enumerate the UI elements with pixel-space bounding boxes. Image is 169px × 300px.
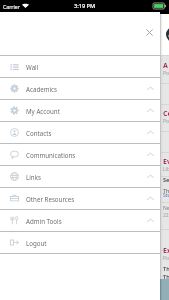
button[interactable]: Links: [0, 166, 160, 187]
staticText: Exams: [163, 246, 169, 256]
staticText: Contacts: [26, 129, 52, 137]
button[interactable]: Logout: [0, 232, 160, 253]
button[interactable]: Wall: [0, 56, 160, 77]
staticText: My Account: [26, 107, 60, 115]
button[interactable]: Contacts: [0, 122, 160, 143]
staticText: Posted 3 days: [163, 118, 169, 125]
staticText: Academics: [26, 85, 58, 93]
staticText: Carrier: [3, 3, 20, 10]
staticText: Wall: [26, 63, 39, 71]
staticText: Posted: [163, 255, 169, 262]
staticText: Communications: [26, 151, 76, 159]
staticText: Convocation: [163, 109, 169, 119]
staticText: Posted 2 days: [163, 70, 169, 77]
staticText: Thu: [163, 273, 169, 280]
staticText: Announcem: [163, 61, 169, 71]
button[interactable]: Communications: [0, 144, 160, 165]
button[interactable]: Other Resources: [0, 188, 160, 209]
button[interactable]: Admin Tools: [0, 210, 160, 231]
button[interactable]: Close menu: [142, 25, 157, 40]
button[interactable]: Academics: [0, 78, 160, 99]
staticText: Events: [163, 157, 169, 167]
staticText: Sept 29: [163, 176, 169, 183]
staticText: Links: [26, 173, 41, 181]
staticText: Logout: [26, 239, 47, 247]
staticText: News: [163, 205, 169, 212]
staticText: Library: [163, 166, 169, 173]
staticText: Student: [163, 192, 169, 199]
staticText: The Team: [163, 187, 169, 194]
staticText: Other Resources: [26, 195, 75, 203]
button[interactable]: My Account: [0, 100, 160, 121]
staticText: 22 Oct: [163, 212, 169, 219]
staticText: 3:19 PM: [74, 2, 96, 10]
staticText: The: [163, 265, 169, 272]
staticText: Admin Tools: [26, 217, 62, 225]
